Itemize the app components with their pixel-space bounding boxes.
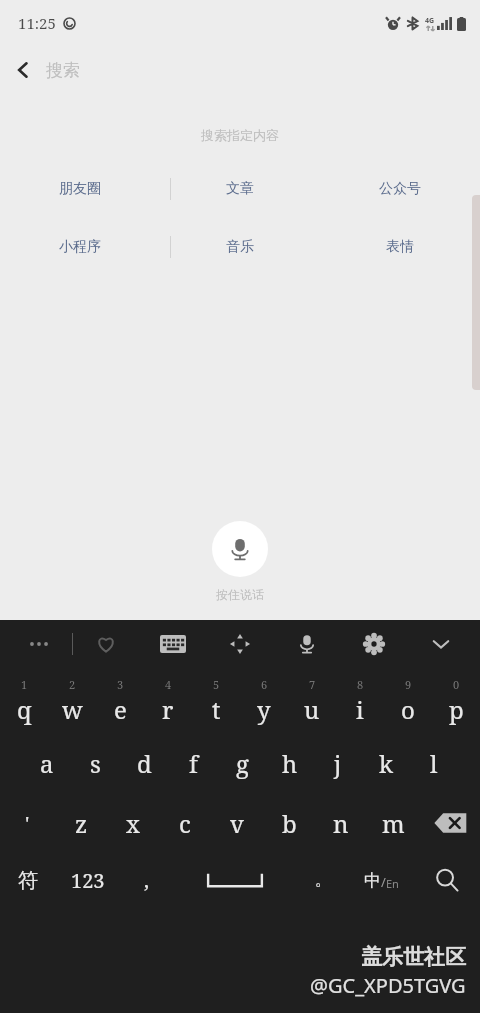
staticText: 盖乐世社区 bbox=[361, 944, 466, 970]
staticText: 符 bbox=[18, 868, 38, 893]
staticText: o bbox=[401, 693, 415, 726]
staticText: 9 bbox=[405, 677, 412, 692]
staticText: e bbox=[114, 693, 127, 726]
staticText: b bbox=[282, 807, 297, 840]
button[interactable]: n bbox=[315, 794, 367, 852]
staticText: 2 bbox=[69, 677, 76, 692]
button[interactable]: Emoji bbox=[73, 620, 139, 668]
staticText: y bbox=[257, 693, 271, 726]
button[interactable]: g bbox=[218, 732, 266, 794]
staticText: En bbox=[386, 876, 399, 891]
staticText: t bbox=[212, 693, 221, 726]
button[interactable]: 3 bbox=[96, 670, 144, 732]
staticText: x bbox=[126, 807, 140, 840]
button[interactable]: z bbox=[55, 794, 107, 852]
button[interactable]: s bbox=[71, 732, 120, 794]
button[interactable]: 123 bbox=[55, 852, 121, 908]
button[interactable]: 符 bbox=[0, 852, 55, 908]
button[interactable]: v bbox=[211, 794, 263, 852]
button[interactable]: m bbox=[367, 794, 419, 852]
staticText: h bbox=[282, 747, 298, 780]
staticText: 按住说话 bbox=[216, 587, 264, 602]
staticText: 表情 bbox=[386, 238, 414, 256]
staticText: q bbox=[17, 693, 32, 726]
button[interactable]: l bbox=[410, 732, 458, 794]
button[interactable]: Settings bbox=[340, 620, 407, 668]
staticText: 6 bbox=[261, 677, 268, 692]
staticText: 4 bbox=[165, 677, 172, 692]
button[interactable]: 2 bbox=[48, 670, 96, 732]
button[interactable]: Hide keyboard bbox=[407, 620, 474, 668]
staticText: u bbox=[304, 693, 320, 726]
button[interactable]: Space bbox=[171, 852, 298, 908]
staticText: n bbox=[333, 807, 349, 840]
staticText: , bbox=[144, 867, 149, 894]
button[interactable]: h bbox=[266, 732, 314, 794]
button[interactable]: ' bbox=[0, 794, 55, 852]
button[interactable]: 6 bbox=[240, 670, 288, 732]
button[interactable]: Backspace bbox=[419, 794, 480, 852]
button[interactable]: c bbox=[159, 794, 211, 852]
button[interactable]: 音乐 bbox=[160, 231, 320, 263]
staticText: 8 bbox=[357, 677, 364, 692]
staticText: 7 bbox=[309, 677, 316, 692]
staticText: 朋友圈 bbox=[59, 180, 101, 198]
button[interactable]: k bbox=[362, 732, 410, 794]
staticText: 0 bbox=[453, 677, 460, 692]
button[interactable]: 文章 bbox=[160, 173, 320, 205]
button[interactable]: 8 bbox=[336, 670, 384, 732]
button[interactable]: Move cursor bbox=[206, 620, 273, 668]
staticText: 公众号 bbox=[379, 180, 421, 198]
staticText: 3 bbox=[117, 677, 124, 692]
staticText: a bbox=[40, 747, 54, 780]
staticText: 。 bbox=[315, 870, 331, 890]
staticText: j bbox=[334, 747, 342, 780]
button[interactable]: 1 bbox=[0, 670, 48, 732]
button[interactable]: Back bbox=[0, 47, 46, 93]
staticText: p bbox=[449, 693, 464, 726]
staticText: 4G bbox=[425, 16, 435, 26]
button[interactable]: Voice input bbox=[273, 620, 340, 668]
staticText: 5 bbox=[213, 677, 220, 692]
button[interactable]: More bbox=[6, 620, 72, 668]
button[interactable]: Hold to talk bbox=[212, 521, 268, 577]
staticText: k bbox=[379, 747, 394, 780]
button[interactable]: Search bbox=[414, 852, 480, 908]
staticText: 11:25 bbox=[18, 13, 56, 33]
button[interactable]: 表情 bbox=[320, 231, 480, 263]
staticText: / bbox=[381, 873, 386, 891]
staticText: r bbox=[162, 693, 174, 726]
button[interactable]: 。 bbox=[298, 852, 348, 908]
staticText: 1 bbox=[21, 677, 28, 692]
button[interactable]: 公众号 bbox=[320, 173, 480, 205]
staticText: s bbox=[90, 747, 101, 780]
button[interactable]: 朋友圈 bbox=[0, 173, 160, 205]
staticText: z bbox=[75, 807, 88, 840]
staticText: 搜索指定内容 bbox=[0, 127, 480, 143]
staticText: i bbox=[356, 693, 364, 726]
staticText: 搜索 bbox=[46, 60, 80, 81]
staticText: g bbox=[236, 747, 249, 780]
staticText: d bbox=[137, 747, 152, 780]
button[interactable]: 4 bbox=[144, 670, 192, 732]
staticText: 音乐 bbox=[226, 238, 254, 256]
button[interactable]: f bbox=[169, 732, 218, 794]
button[interactable]: j bbox=[314, 732, 362, 794]
staticText: @GC_XPD5TGVG bbox=[310, 972, 466, 999]
button[interactable]: Switch Chinese English bbox=[348, 852, 414, 908]
button[interactable]: , bbox=[121, 852, 171, 908]
button[interactable]: 5 bbox=[192, 670, 240, 732]
button[interactable]: Keyboard layout bbox=[139, 620, 206, 668]
button[interactable]: a bbox=[22, 732, 71, 794]
button[interactable]: 7 bbox=[288, 670, 336, 732]
staticText: f bbox=[189, 747, 198, 780]
button[interactable]: 9 bbox=[384, 670, 432, 732]
button[interactable]: b bbox=[263, 794, 315, 852]
button[interactable]: 小程序 bbox=[0, 231, 160, 263]
button[interactable]: d bbox=[120, 732, 169, 794]
button[interactable]: 0 bbox=[432, 670, 480, 732]
staticText: ' bbox=[25, 810, 30, 837]
button[interactable]: x bbox=[107, 794, 159, 852]
staticText: 文章 bbox=[226, 180, 254, 198]
staticText: 中 bbox=[364, 870, 381, 891]
